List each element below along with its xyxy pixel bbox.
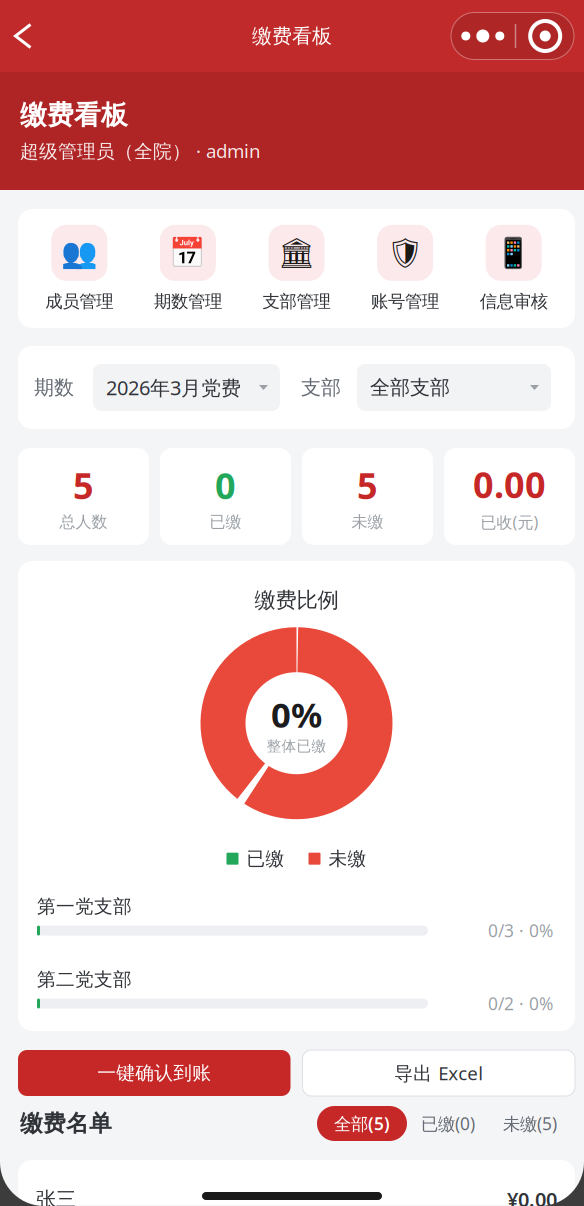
button[interactable]: 👥 bbox=[25, 225, 134, 312]
staticText: 第二党支部 bbox=[37, 968, 132, 991]
staticText: 支部 bbox=[301, 375, 341, 400]
staticText: 缴费名单 bbox=[20, 1110, 112, 1137]
staticText: 0.00 bbox=[473, 460, 546, 508]
staticText: 缴费看板 bbox=[252, 24, 332, 48]
button[interactable]: More bbox=[451, 12, 515, 59]
staticText: 张三 bbox=[36, 1187, 76, 1206]
staticText: 期数管理 bbox=[154, 291, 222, 312]
staticText: 期数 bbox=[34, 375, 74, 400]
staticText: 导出 Excel bbox=[394, 1061, 483, 1085]
button[interactable]: 已缴(0) bbox=[407, 1106, 489, 1141]
staticText: ¥0.00 bbox=[507, 1186, 557, 1206]
staticText: 2026年3月党费 bbox=[106, 374, 241, 401]
button[interactable]: 一键确认到账 bbox=[18, 1050, 290, 1096]
staticText: 🛡 bbox=[387, 236, 424, 270]
staticText: 🏛 bbox=[278, 236, 315, 270]
button[interactable]: Close bbox=[516, 12, 574, 59]
staticText: 整体已缴 bbox=[266, 737, 326, 755]
staticText: 总人数 bbox=[59, 512, 107, 532]
staticText: 未缴 bbox=[328, 847, 366, 870]
staticText: 已收(元) bbox=[480, 511, 538, 532]
button[interactable]: 📅 bbox=[134, 225, 242, 312]
staticText: 0% bbox=[271, 691, 322, 737]
button[interactable]: 📱 bbox=[459, 225, 568, 312]
staticText: 已缴 bbox=[246, 847, 284, 870]
staticText: 超级管理员（全院） · admin bbox=[20, 138, 261, 163]
staticText: 账号管理 bbox=[371, 291, 439, 312]
staticText: 5 bbox=[73, 461, 94, 509]
staticText: 已缴 bbox=[209, 512, 241, 532]
staticText: 👥 bbox=[61, 236, 98, 270]
button[interactable]: Back bbox=[0, 12, 48, 60]
staticText: 信息审核 bbox=[480, 291, 548, 312]
staticText: 未缴(5) bbox=[503, 1112, 557, 1135]
staticText: 第一党支部 bbox=[37, 895, 132, 918]
button[interactable]: 🏛 bbox=[242, 225, 351, 312]
staticText: 0 bbox=[215, 461, 236, 509]
staticText: 缴费比例 bbox=[254, 587, 338, 613]
button[interactable]: 🛡 bbox=[351, 225, 459, 312]
staticText: 📅 bbox=[169, 236, 206, 270]
button[interactable]: 张三 bbox=[18, 1160, 575, 1205]
staticText: 全部(5) bbox=[334, 1112, 390, 1135]
staticText: 📱 bbox=[495, 236, 532, 270]
button[interactable]: 未缴(5) bbox=[489, 1106, 571, 1141]
button[interactable]: 2026年3月党费 bbox=[93, 364, 280, 411]
staticText: 缴费看板 bbox=[20, 99, 128, 131]
staticText: 0/3 · 0% bbox=[488, 919, 553, 942]
staticText: 全部支部 bbox=[370, 375, 450, 400]
button[interactable]: 导出 Excel bbox=[302, 1050, 575, 1096]
staticText: 0/2 · 0% bbox=[488, 992, 553, 1015]
staticText: 一键确认到账 bbox=[97, 1061, 211, 1084]
button[interactable]: 全部(5) bbox=[317, 1106, 407, 1141]
staticText: 成员管理 bbox=[45, 291, 113, 312]
button[interactable]: 全部支部 bbox=[357, 364, 551, 411]
staticText: 5 bbox=[357, 461, 378, 509]
staticText: 支部管理 bbox=[262, 291, 330, 312]
staticText: 已缴(0) bbox=[421, 1112, 475, 1135]
staticText: 未缴 bbox=[351, 512, 383, 532]
